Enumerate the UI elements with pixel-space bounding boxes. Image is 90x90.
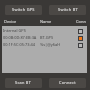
staticText: Switch GPS [12,7,35,12]
button[interactable]: Not connected [74,42,87,49]
button[interactable]: Scan BT [5,78,42,88]
staticText: Connect [59,80,76,85]
button[interactable]: Switch GPS [5,5,42,15]
button[interactable]: Connect [49,78,86,88]
button[interactable]: 00:0B:0D:87:EB:3A [2,35,87,42]
staticText: %s|@y6aH [40,42,74,47]
button[interactable]: Connected [74,35,87,42]
button[interactable]: Not connected [74,28,87,35]
staticText: Internal GPS [3,28,40,33]
button[interactable]: Internal GPS [2,28,87,35]
staticText: Device [4,19,40,24]
button[interactable]: 00:1F:5C:05:73:44 [2,42,87,49]
staticText: Scan BT [15,80,32,85]
staticText: BT-GPS [40,35,74,40]
button[interactable]: Switch BT [49,5,86,15]
staticText: 00:0B:0D:87:EB:3A [3,35,40,40]
staticText: Conn [76,19,86,24]
staticText: Switch BT [58,7,78,12]
staticText: 00:1F:5C:05:73:44 [3,42,40,47]
staticText: Name [40,19,76,24]
